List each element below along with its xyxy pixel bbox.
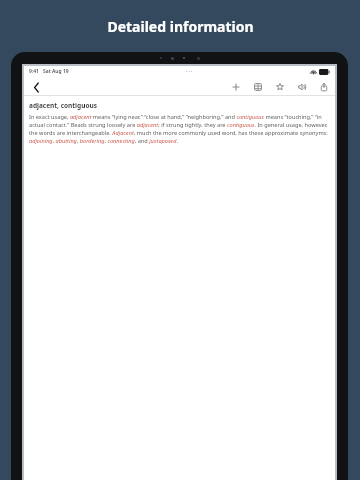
button[interactable]: Pronounce	[295, 80, 308, 93]
staticText: 9:41	[29, 68, 39, 75]
staticText: adjacent, contiguous	[29, 101, 97, 110]
staticText: In exact usage, adjacent means “lying ne…	[29, 113, 330, 145]
button[interactable]: Back	[29, 80, 43, 94]
button[interactable]: Favorite	[273, 80, 286, 93]
staticText: • • •	[186, 69, 193, 74]
button[interactable]: Add	[229, 80, 242, 93]
button[interactable]: Share	[317, 80, 330, 93]
button[interactable]: Table of contents	[251, 80, 264, 93]
staticText: Detailed information	[107, 17, 254, 36]
staticText: Sat Aug 19	[43, 68, 69, 75]
